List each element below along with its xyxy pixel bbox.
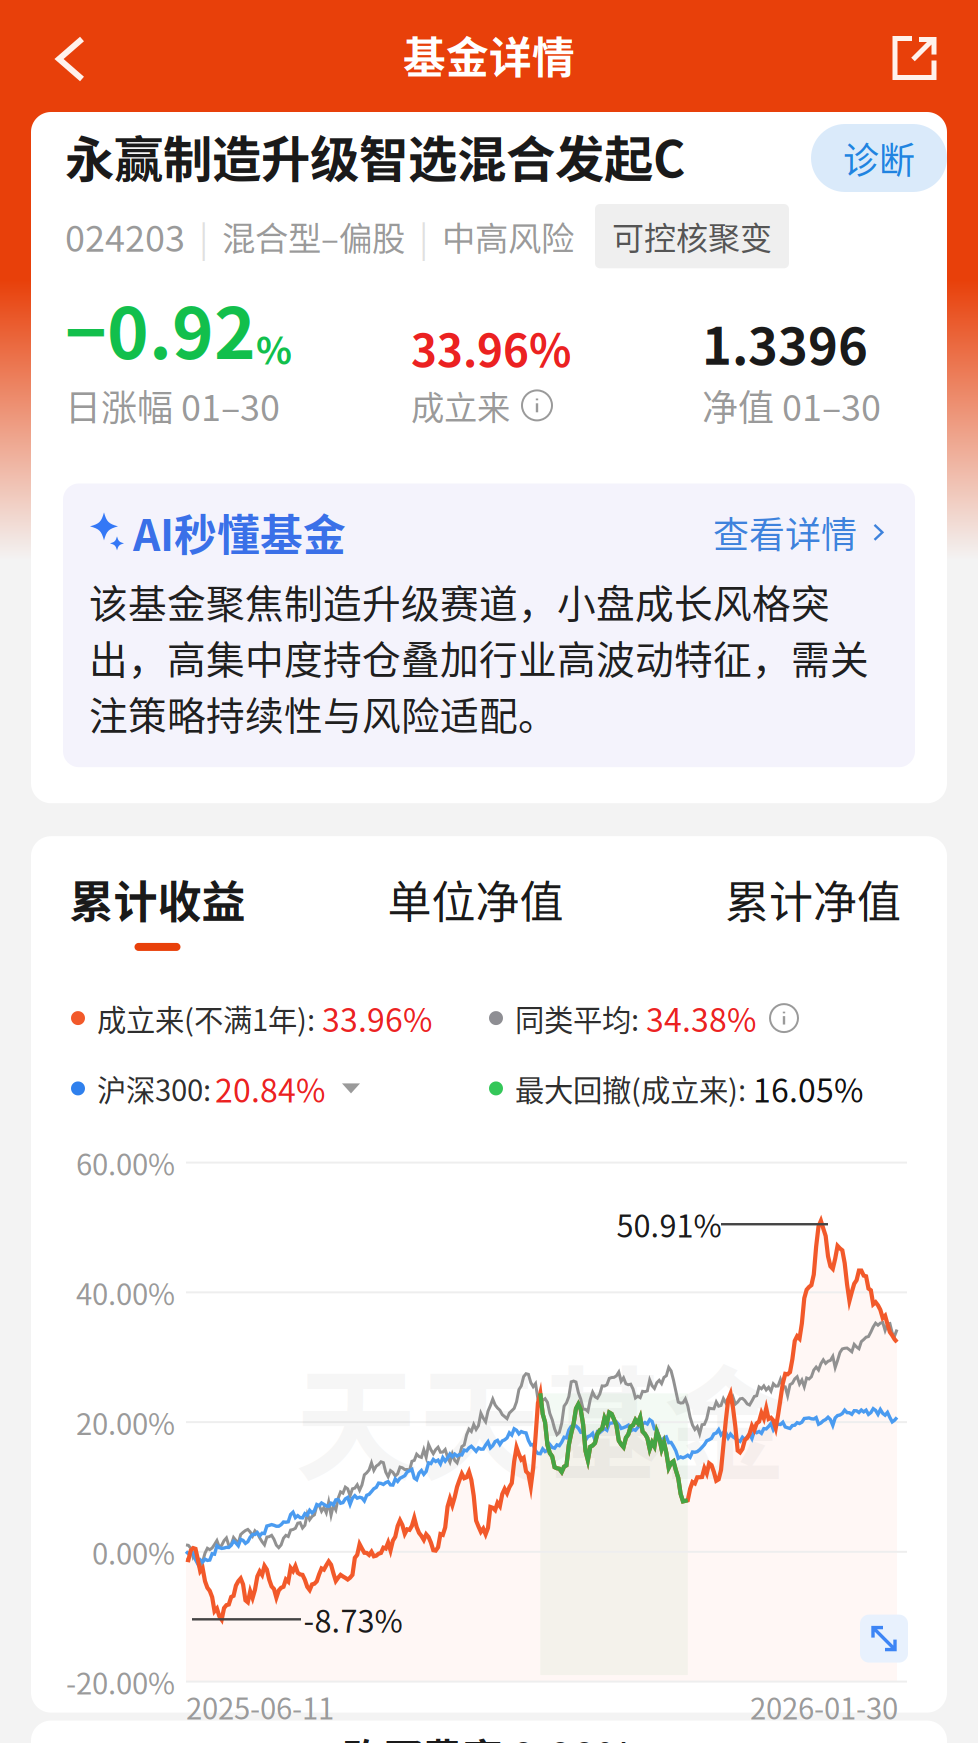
button[interactable]: 累计净值 (648, 867, 978, 951)
staticText: 基金详情 (403, 24, 575, 86)
staticText: 诊断 (843, 132, 915, 184)
staticText: 单位净值 (387, 867, 563, 931)
staticText: -8.73% (303, 1597, 402, 1641)
button[interactable]: 查看详情 (713, 506, 889, 558)
staticText: 成立来 (411, 381, 510, 430)
staticText: 20.00% (76, 1401, 175, 1443)
staticText: 沪深300: (97, 1067, 211, 1110)
staticText: 中高风险 (442, 212, 574, 260)
staticText: 可控核聚变 (612, 213, 772, 259)
staticText: | (199, 211, 208, 261)
staticText: 净值 01–30 (702, 379, 881, 431)
button[interactable]: 全屏查看 (860, 1615, 908, 1663)
staticText: −0.92 (65, 277, 256, 379)
staticText: 查看详情 (713, 506, 857, 558)
staticText: 0.00% (92, 1531, 175, 1573)
staticText: AI秒懂基金 (133, 501, 346, 563)
staticText: 1.3396 (702, 306, 868, 379)
button[interactable]: 累计收益 (12, 867, 303, 951)
staticText: 2025-06-11 (186, 1685, 334, 1728)
staticText: 2026-01-30 (750, 1685, 898, 1728)
staticText: 购买费率 0.00% (342, 1727, 635, 1743)
staticText: 成立来(不满1年): (97, 997, 315, 1039)
staticText: 天天基金 (295, 1328, 787, 1505)
staticText: 16.05% (753, 1065, 863, 1112)
button[interactable]: 单位净值 (303, 867, 648, 951)
staticText: | (419, 211, 428, 261)
button[interactable]: 分享 (854, 3, 975, 113)
button[interactable]: 诊断 (811, 124, 947, 192)
staticText: 该基金聚焦制造升级赛道，小盘成长风格突出，高集中度持仓叠加行业高波动特征，需关注… (89, 573, 869, 741)
staticText: 最大回撤(成立来): (515, 1067, 746, 1110)
staticText: 20.84% (215, 1065, 325, 1112)
staticText: 34.38% (646, 995, 756, 1041)
staticText: 33.96% (322, 995, 432, 1041)
staticText: 同类平均: (515, 997, 639, 1039)
staticText: 永赢制造升级智选混合发起C (65, 120, 685, 191)
staticText: 累计收益 (69, 867, 245, 931)
button[interactable]: 返回 (3, 4, 137, 114)
staticText: 40.00% (76, 1271, 175, 1314)
staticText: 60.00% (76, 1141, 175, 1184)
staticText: % (256, 321, 292, 375)
staticText: 混合型–偏股 (222, 212, 405, 260)
staticText: -20.00% (66, 1660, 175, 1703)
staticText: 024203 (65, 210, 185, 262)
staticText: 日涨幅 01–30 (65, 379, 280, 431)
staticText: 累计净值 (725, 867, 901, 931)
staticText: 33.96% (411, 316, 571, 379)
staticText: 50.91% (616, 1202, 721, 1246)
